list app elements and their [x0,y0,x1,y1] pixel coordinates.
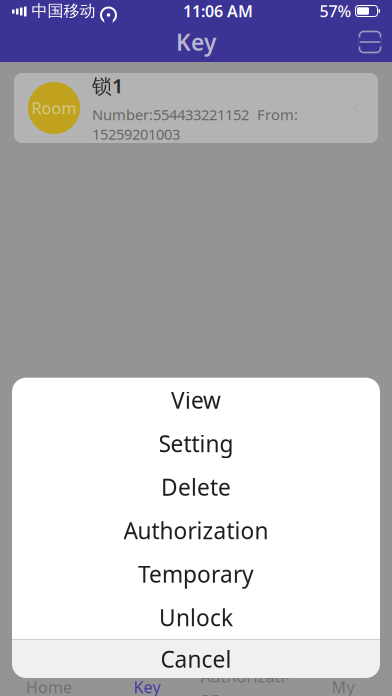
button[interactable]: View [12,378,380,422]
button[interactable]: Authorization [12,509,380,552]
staticText: Room [31,97,76,119]
staticText: Authorization [200,666,289,696]
staticText: Setting [158,428,233,458]
staticText: 57% [319,0,351,22]
staticText: Delete [161,472,231,502]
button[interactable]: Home [0,678,98,696]
button[interactable]: Cancel [12,640,380,678]
staticText: 11:06 AM [183,0,253,22]
button[interactable]: Unlock [12,596,380,639]
button[interactable]: Key [98,678,196,696]
staticText: Authorization [123,515,268,545]
staticText: 锁1 [92,72,123,99]
button[interactable]: Scan QR code [348,22,392,62]
button[interactable]: Temporary [12,552,380,596]
button[interactable]: Room [14,73,378,143]
staticText: Home [26,676,72,696]
staticText: Temporary [138,559,254,589]
button[interactable]: Authorization [196,678,294,696]
staticText: Cancel [160,644,231,674]
button[interactable]: Setting [12,422,380,465]
staticText: Key [176,27,216,57]
staticText: View [171,385,221,415]
staticText: Unlock [159,602,233,632]
staticText: 中国移动 [31,1,95,21]
staticText: Number:554433221152 From:15259201003 [92,105,298,144]
button[interactable]: Delete [12,465,380,509]
button[interactable]: My [294,678,392,696]
staticText: Key [133,676,160,696]
staticText: My [331,676,354,696]
